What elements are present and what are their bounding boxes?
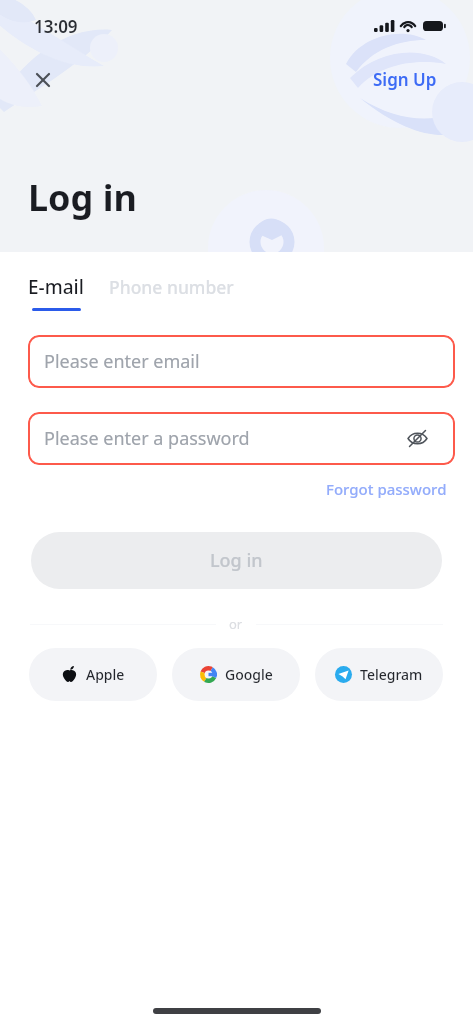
staticText: Phone number [109,275,234,299]
button[interactable]: Please enter email [28,335,455,388]
staticText: Please enter a password [44,426,250,451]
staticText: Please enter email [44,349,200,374]
staticText: 13:09 [34,15,78,38]
staticText: Forgot password [326,479,447,499]
button[interactable]: Phone number [109,275,234,299]
button[interactable]: Google [172,648,300,701]
button[interactable]: Telegram [315,648,443,701]
staticText: or [229,615,243,633]
button[interactable]: Log in [31,532,442,589]
staticText: Sign Up [373,68,437,91]
button[interactable]: Apple [29,648,157,701]
button[interactable]: Sign Up [373,68,437,91]
staticText: Telegram [360,665,423,684]
button[interactable]: E-mail [28,274,84,311]
staticText: Google [225,665,273,684]
staticText: Log in [28,173,137,222]
button[interactable]: Forgot password [326,479,447,499]
button[interactable]: Close [27,64,59,96]
staticText: E-mail [28,274,84,300]
button[interactable]: Please enter a password [28,412,455,465]
staticText: Apple [86,665,125,684]
staticText: Log in [210,548,263,573]
